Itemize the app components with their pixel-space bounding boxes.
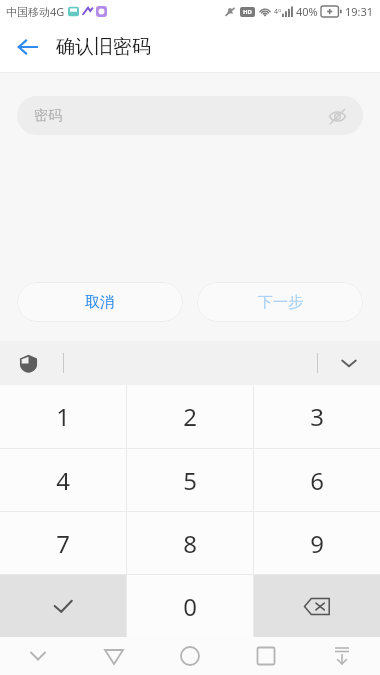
staticText: 确认旧密码: [56, 35, 151, 59]
button[interactable]: 下一步: [197, 282, 363, 322]
button[interactable]: 6: [254, 449, 380, 511]
button[interactable]: 9: [254, 512, 380, 574]
staticText: 7: [56, 527, 70, 560]
staticText: 3: [310, 400, 324, 433]
staticText: HD: [243, 8, 252, 16]
button[interactable]: 0: [127, 575, 253, 637]
staticText: 6: [310, 464, 324, 497]
button[interactable]: Recents: [228, 637, 304, 675]
staticText: 8: [183, 527, 197, 560]
staticText: 密码: [34, 107, 62, 125]
button[interactable]: 2: [127, 385, 253, 448]
staticText: 2: [183, 400, 197, 433]
button[interactable]: Confirm: [0, 575, 126, 637]
button[interactable]: 7: [0, 512, 126, 574]
staticText: 19:31: [345, 4, 374, 19]
staticText: 5: [183, 464, 197, 497]
staticText: 4: [56, 464, 70, 497]
button[interactable]: 4: [0, 449, 126, 511]
staticText: 1: [56, 400, 70, 433]
staticText: 下一步: [258, 293, 303, 312]
button[interactable]: Back: [10, 29, 46, 65]
staticText: 4ᴳ: [274, 7, 282, 17]
button[interactable]: 3: [254, 385, 380, 448]
staticText: 9: [310, 527, 324, 560]
button[interactable]: 8: [127, 512, 253, 574]
button[interactable]: Hide keyboard: [0, 637, 76, 675]
staticText: 40%: [296, 4, 318, 19]
button[interactable]: 密码: [17, 96, 363, 135]
button[interactable]: Back: [76, 637, 152, 675]
button[interactable]: Backspace: [254, 575, 380, 637]
button[interactable]: Show password: [323, 102, 351, 130]
button[interactable]: Hide keyboard: [330, 344, 368, 382]
button[interactable]: 5: [127, 449, 253, 511]
button[interactable]: 取消: [17, 282, 183, 322]
staticText: 0: [183, 590, 197, 623]
staticText: 中国移动4G: [6, 4, 65, 19]
staticText: 取消: [85, 293, 115, 312]
button[interactable]: 1: [0, 385, 126, 448]
button[interactable]: Collapse: [304, 637, 380, 675]
button[interactable]: Secure keyboard: [12, 347, 44, 379]
button[interactable]: Home: [152, 637, 228, 675]
